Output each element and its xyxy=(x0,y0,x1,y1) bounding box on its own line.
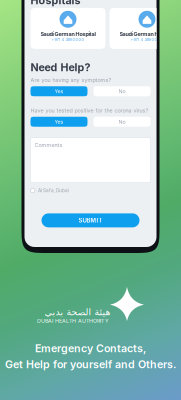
staticText: هيئة الصحة بدبي xyxy=(44,307,110,318)
button[interactable]: No xyxy=(93,86,150,96)
button[interactable]: Yes xyxy=(30,117,87,127)
staticText: +971 4 389 0000 xyxy=(130,37,163,42)
staticText: SUBMIT xyxy=(78,217,102,224)
button[interactable]: No xyxy=(93,117,150,127)
button[interactable]: Al Safa, Dubai xyxy=(30,188,150,193)
button[interactable]: Yes xyxy=(30,86,87,96)
staticText: Yes xyxy=(54,118,63,125)
staticText: No xyxy=(118,118,125,125)
staticText: Need Help? xyxy=(30,61,90,74)
button[interactable]: Saudi German Hospital xyxy=(109,8,181,49)
staticText: Saudi German Hospital xyxy=(119,31,174,37)
staticText: +971 4 389 0000 xyxy=(51,37,84,42)
staticText: Hospitals xyxy=(30,0,80,7)
staticText: Comments xyxy=(34,142,62,148)
staticText: Are you having any symptoms? xyxy=(30,77,111,83)
staticText: Saudi German Hospital xyxy=(40,31,95,37)
staticText: No xyxy=(118,88,125,94)
staticText: Yes xyxy=(54,88,63,94)
staticText: Emergency Contacts, xyxy=(35,342,146,355)
staticText: Have you tested positive for the corona … xyxy=(30,107,148,114)
button[interactable]: SUBMIT xyxy=(41,213,139,227)
staticText: Al Safa, Dubai xyxy=(38,188,69,193)
staticText: Get Help for yourself and Others. xyxy=(5,358,176,371)
button[interactable]: Saudi German Hospital xyxy=(30,8,105,49)
staticText: DUBAI HEALTH AUTHORITY xyxy=(37,317,109,324)
